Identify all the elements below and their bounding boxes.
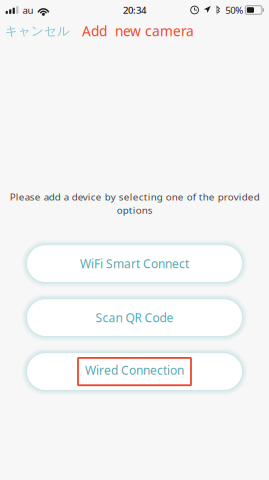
staticText: キャンセル	[5, 23, 70, 39]
staticText: Wired Connection	[85, 362, 184, 378]
button[interactable]: Wired Connection	[26, 351, 243, 393]
staticText: Scan QR Code	[95, 309, 173, 326]
staticText: Add new camera	[82, 22, 194, 40]
staticText: 20:34	[123, 3, 146, 17]
staticText: Please add a device by selecting one of …	[9, 190, 259, 217]
button[interactable]: WiFi Smart Connect	[26, 243, 243, 285]
staticText: au	[22, 3, 33, 17]
staticText: WiFi Smart Connect	[80, 255, 189, 272]
staticText: 50%	[225, 3, 243, 17]
button[interactable]: キャンセル	[0, 19, 75, 43]
button[interactable]: Scan QR Code	[26, 297, 243, 339]
